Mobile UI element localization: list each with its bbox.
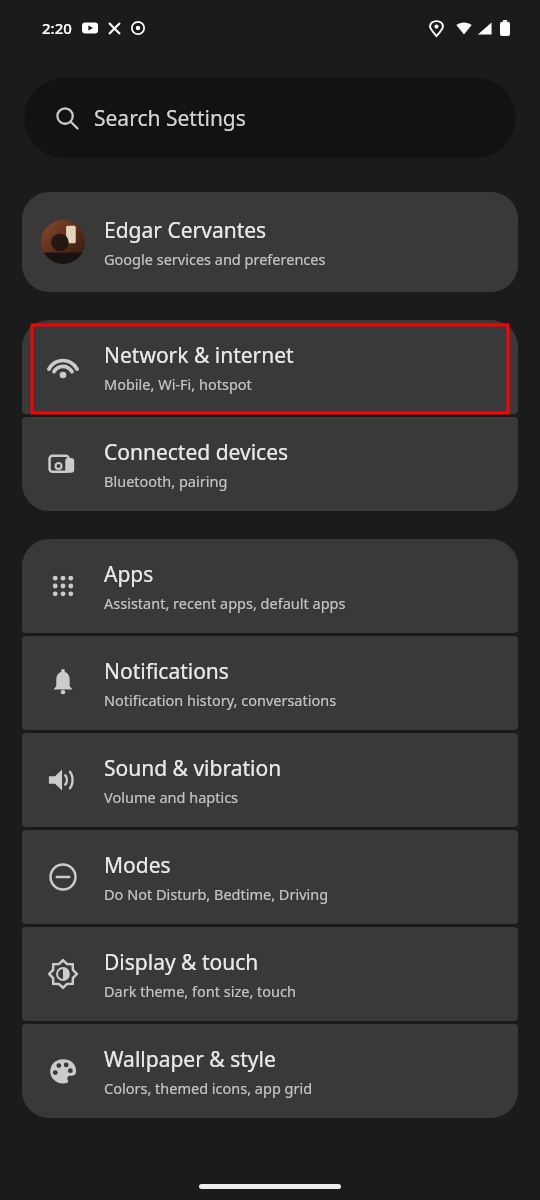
button[interactable]: Display and touch	[22, 927, 518, 1021]
button[interactable]: Edgar Cervantes	[22, 192, 518, 292]
staticText: Network & internet	[104, 341, 294, 370]
staticText: Wallpaper & style	[104, 1045, 276, 1074]
other: Display and touch	[47, 958, 79, 990]
staticText: Assistant, recent apps, default apps	[104, 593, 346, 613]
staticText: Volume and haptics	[104, 787, 239, 807]
staticText: Colors, themed icons, app grid	[104, 1078, 313, 1098]
button[interactable]: Modes	[22, 830, 518, 924]
staticText: Search Settings	[94, 104, 246, 133]
staticText: Connected devices	[104, 438, 289, 467]
staticText: Modes	[104, 851, 171, 880]
staticText: Do Not Disturb, Bedtime, Driving	[104, 884, 329, 904]
staticText: Sound & vibration	[104, 754, 282, 783]
staticText: Notification history, conversations	[104, 690, 337, 710]
staticText: Display & touch	[104, 948, 259, 977]
other: Apps	[48, 571, 78, 601]
staticText: 2:20	[42, 18, 72, 38]
button[interactable]: Sound and vibration	[22, 733, 518, 827]
other: Sound and vibration	[47, 764, 79, 796]
other: Wallpaper and style	[47, 1055, 79, 1087]
other: Modes	[47, 861, 79, 893]
button[interactable]: Search	[24, 78, 516, 158]
button[interactable]: Notifications	[22, 636, 518, 730]
staticText: Edgar Cervantes	[104, 216, 267, 245]
staticText: Dark theme, font size, touch	[104, 981, 296, 1001]
other: Network and internet	[46, 350, 80, 384]
button[interactable]: Apps	[22, 539, 518, 633]
staticText: Mobile, Wi-Fi, hotspot	[104, 374, 252, 394]
other: Connected devices	[47, 448, 79, 480]
other: Search	[55, 106, 79, 130]
staticText: Apps	[104, 560, 154, 589]
button[interactable]: Connected devices	[22, 417, 518, 511]
button[interactable]: Wallpaper and style	[22, 1024, 518, 1118]
staticText: Google services and preferences	[104, 249, 326, 269]
other: Notifications	[47, 667, 79, 699]
staticText: Bluetooth, pairing	[104, 471, 228, 491]
staticText: Notifications	[104, 657, 229, 686]
button[interactable]: Network and internet	[22, 320, 518, 414]
